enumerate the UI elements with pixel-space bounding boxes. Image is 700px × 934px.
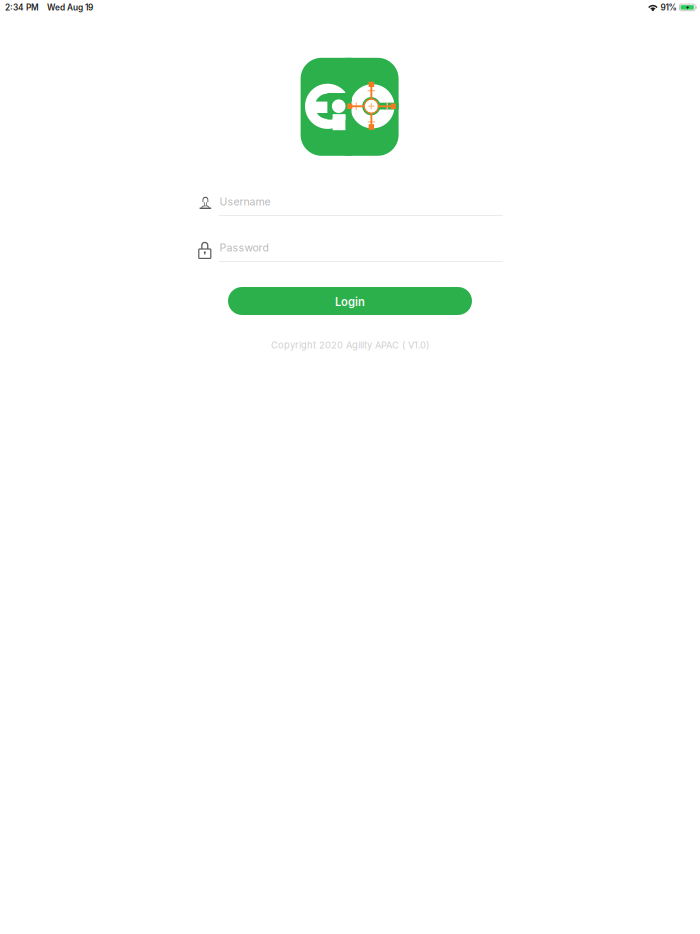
button[interactable]: Login (228, 287, 472, 315)
staticText: 2:34 PM (5, 2, 39, 12)
staticText: Copyright 2020 Agility APAC ( V1.0) (271, 339, 429, 351)
staticText: 91% (661, 2, 677, 12)
staticText: Password (219, 241, 268, 254)
staticText: Login (335, 295, 365, 309)
staticText: Username (219, 195, 270, 208)
staticText: Wed Aug 19 (47, 2, 93, 12)
